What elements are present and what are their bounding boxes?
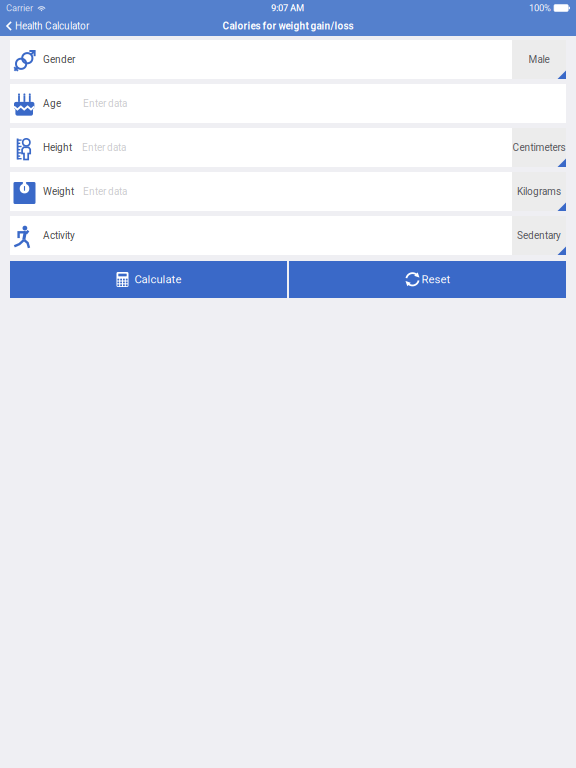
button[interactable]: Centimeters — [512, 128, 566, 167]
staticText: Activity — [43, 230, 75, 241]
button[interactable]: Male — [512, 40, 566, 79]
button[interactable]: Weight — [10, 172, 566, 211]
staticText: Male — [528, 54, 549, 65]
button[interactable]: Height — [10, 128, 566, 167]
staticText: Enter data — [82, 142, 126, 153]
staticText: Sedentary — [517, 230, 561, 241]
staticText: Enter data — [83, 186, 127, 197]
staticText: Calories for weight gain/loss — [222, 20, 353, 32]
button[interactable]: Sedentary — [512, 216, 566, 255]
staticText: Reset — [421, 273, 450, 286]
staticText: Calculate — [134, 273, 181, 286]
staticText: Enter data — [83, 98, 127, 109]
staticText: Gender — [43, 54, 75, 65]
staticText: Kilograms — [517, 186, 561, 197]
staticText: Centimeters — [512, 142, 565, 153]
staticText: 9:07 AM — [271, 2, 304, 13]
staticText: Health Calculator — [15, 20, 89, 32]
button[interactable]: Gender — [10, 40, 566, 79]
staticText: 100% — [529, 2, 551, 13]
staticText: Age — [43, 98, 61, 109]
button[interactable]: Health Calculator — [0, 16, 97, 36]
button[interactable]: Calculate — [10, 261, 287, 298]
staticText: Weight — [43, 186, 74, 197]
staticText: Height — [43, 142, 72, 153]
button[interactable]: Age — [10, 84, 566, 123]
button[interactable]: Activity — [10, 216, 566, 255]
button[interactable]: Kilograms — [512, 172, 566, 211]
staticText: Carrier — [6, 2, 33, 13]
button[interactable]: Reset — [289, 261, 566, 298]
